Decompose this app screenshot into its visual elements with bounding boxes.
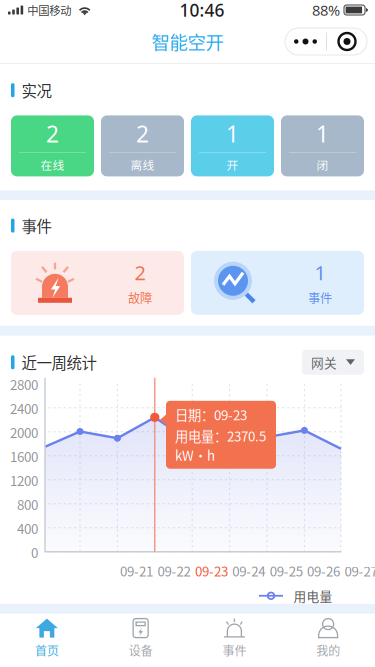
staticText: 开 [226,156,238,173]
staticText: 事件 [308,289,332,306]
staticText: 09-21 [120,561,153,580]
staticText: 中国移动 [27,2,71,18]
button[interactable]: 首页 [0,614,94,663]
staticText: 闭 [316,156,328,173]
staticText: 09-24 [232,561,265,580]
staticText: 故障 [128,289,152,306]
staticText: 1 [314,259,325,286]
button[interactable]: 1 [281,115,364,176]
staticText: 用电量：2370.5 kW·h [175,426,266,465]
staticText: 1 [226,119,239,149]
button[interactable]: 1 [191,251,364,315]
button[interactable]: 我的 [281,614,375,663]
button[interactable]: 事件 [187,614,281,663]
button[interactable]: 2 [11,251,184,315]
staticText: 实况 [21,79,51,101]
staticText: 1 [316,119,329,149]
staticText: 日期：09-23 [175,405,247,424]
staticText: 0 [31,543,38,562]
staticText: 我的 [316,642,340,659]
staticText: 1600 [10,447,38,466]
staticText: 近一周统计 [21,351,96,373]
staticText: 2 [134,259,145,286]
button[interactable]: 设备 [94,614,188,663]
button[interactable]: 网关 [302,350,364,375]
button[interactable]: 1 [191,115,274,176]
staticText: 88% [312,0,340,20]
staticText: 在线 [40,156,64,173]
staticText: 09-25 [270,561,303,580]
staticText: 09-22 [157,561,190,580]
staticText: 09-26 [307,561,340,580]
button[interactable]: More options [285,28,367,55]
staticText: 用电量 [293,587,332,605]
staticText: 800 [17,495,38,514]
staticText: 首页 [35,642,59,659]
staticText: 1200 [10,471,38,490]
staticText: 09-23 [195,561,228,580]
staticText: 2800 [10,375,38,394]
button[interactable]: 2 [11,115,94,176]
staticText: 10:46 [180,0,225,21]
staticText: 2400 [10,399,38,418]
staticText: 事件 [222,642,246,659]
staticText: 2 [136,119,149,149]
staticText: 2000 [10,423,38,442]
staticText: 2 [46,119,59,149]
staticText: 设备 [129,642,153,659]
staticText: 事件 [21,214,51,237]
staticText: 09-27 [344,561,375,580]
staticText: 400 [17,519,38,538]
staticText: 离线 [130,156,154,173]
button[interactable]: 2 [101,115,184,176]
staticText: 网关 [311,353,337,371]
staticText: 智能空开 [151,28,223,55]
